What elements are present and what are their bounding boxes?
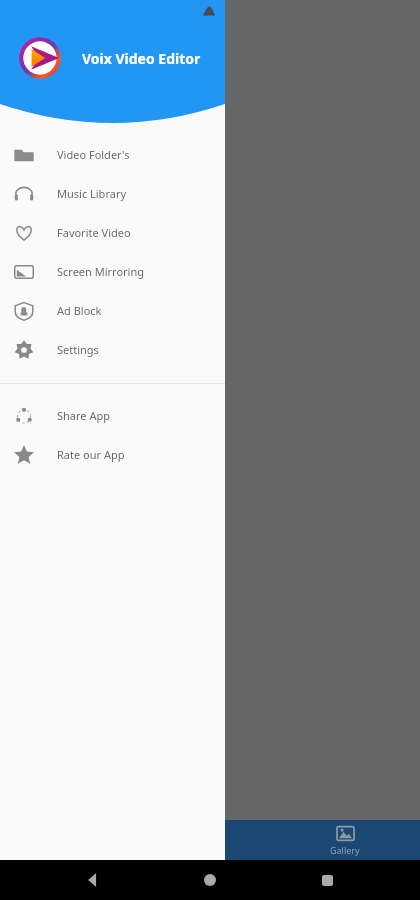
staticText: Video Folder's bbox=[57, 147, 130, 162]
button[interactable]: Favorite Video bbox=[0, 213, 225, 252]
staticText: Voix Video Editor bbox=[82, 49, 201, 68]
staticText: Gallery bbox=[330, 844, 360, 856]
button[interactable]: Recent apps bbox=[297, 860, 357, 900]
staticText: Music Library bbox=[57, 186, 127, 201]
staticText: Favorite Video bbox=[57, 225, 131, 240]
button[interactable]: Music Library bbox=[0, 174, 225, 213]
button[interactable]: Share App bbox=[0, 396, 225, 435]
staticText: Rate our App bbox=[57, 447, 125, 462]
button[interactable]: Screen Mirroring bbox=[0, 252, 225, 291]
button[interactable]: Rate our App bbox=[0, 435, 225, 474]
staticText: Share App bbox=[57, 408, 110, 423]
staticText: Ad Block bbox=[57, 303, 102, 318]
button[interactable]: Back bbox=[63, 860, 123, 900]
staticText: Screen Mirroring bbox=[57, 264, 144, 279]
button[interactable]: Gallery bbox=[290, 820, 400, 860]
button[interactable]: Settings bbox=[0, 330, 225, 369]
button[interactable]: Video Folder's bbox=[0, 135, 225, 174]
staticText: Settings bbox=[57, 342, 99, 357]
button[interactable]: Ad Block bbox=[0, 291, 225, 330]
button[interactable]: Home bbox=[180, 860, 240, 900]
